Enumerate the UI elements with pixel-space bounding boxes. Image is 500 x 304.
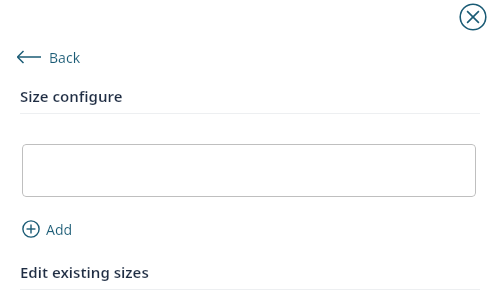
button[interactable]: [22, 144, 476, 197]
button[interactable]: Back: [14, 44, 81, 70]
staticText: Add: [46, 220, 73, 239]
button[interactable]: Add: [22, 216, 73, 242]
button[interactable]: Close: [459, 3, 487, 31]
staticText: Back: [49, 48, 81, 67]
staticText: Edit existing sizes: [20, 262, 149, 282]
staticText: Size configure: [20, 86, 123, 106]
